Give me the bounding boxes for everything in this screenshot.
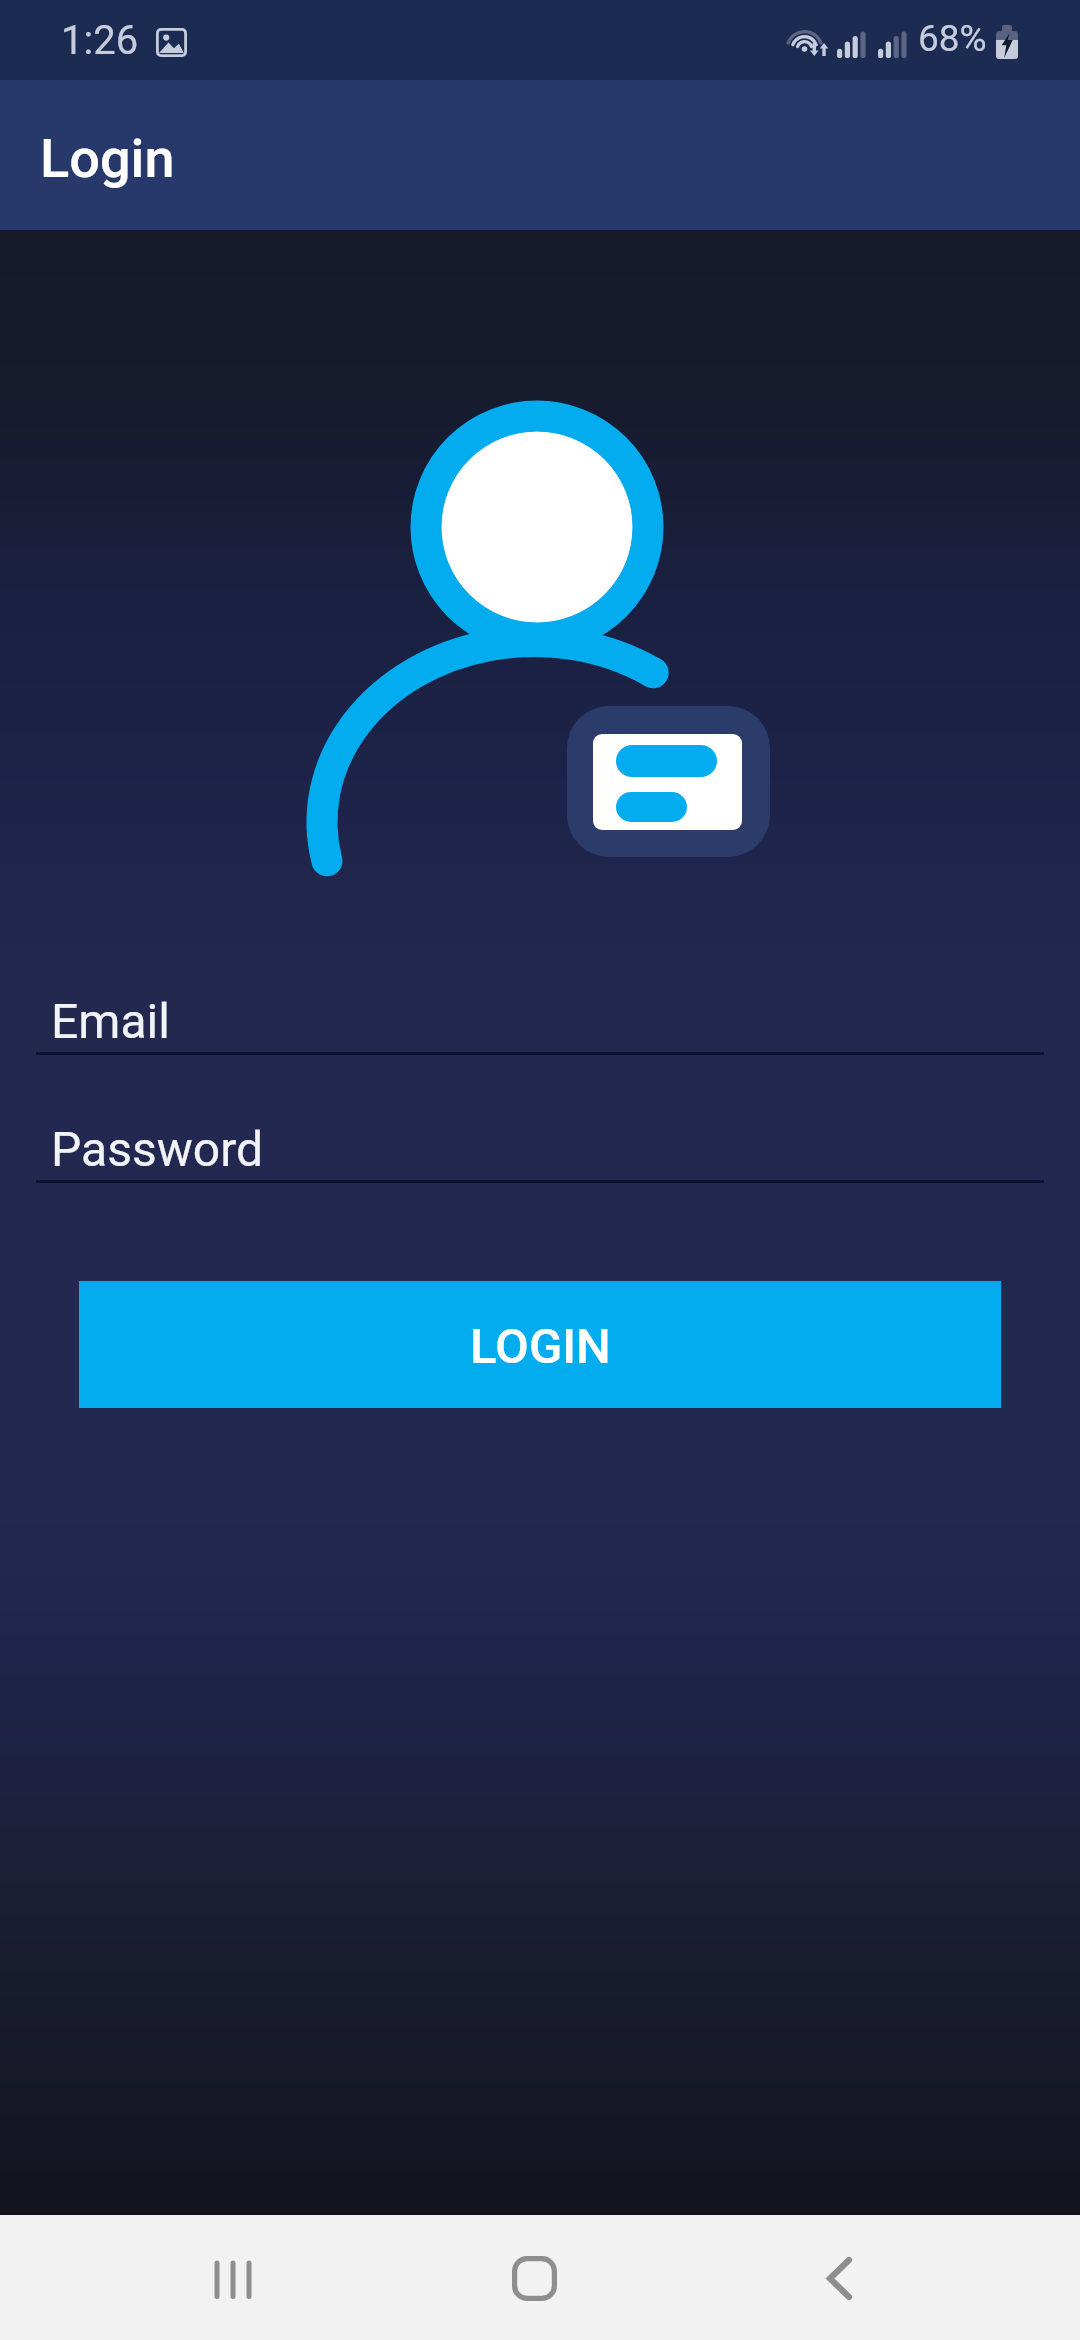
button[interactable]: Email [36,993,1044,1055]
staticText: Email [51,993,170,1049]
staticText: 1:26 [61,17,139,64]
button[interactable]: Back [779,2234,899,2322]
button[interactable]: Password [36,1121,1044,1183]
staticText: Password [51,1121,264,1177]
button[interactable]: Home [474,2234,594,2322]
staticText: 68% [918,17,987,60]
staticText: Login [40,127,175,190]
button[interactable]: Recent apps [175,2236,295,2324]
button[interactable]: LOGIN [79,1281,1001,1408]
staticText: LOGIN [470,1318,611,1375]
